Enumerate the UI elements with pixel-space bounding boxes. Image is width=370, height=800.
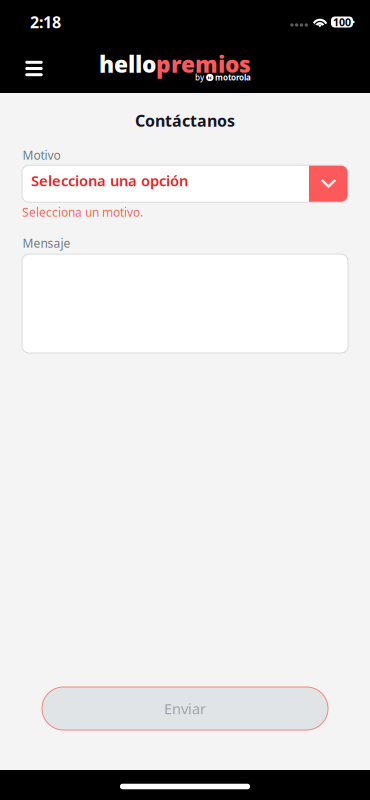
staticText: 2:18 [30,11,61,33]
staticText: 100 [333,15,351,29]
staticText: Enviar [164,699,206,718]
button[interactable]: Mensaje [22,254,348,353]
staticText: motorola [215,72,251,83]
staticText: Mensaje [22,235,70,251]
staticText: by [195,72,204,83]
button[interactable]: Enviar [42,687,328,730]
button[interactable]: Menu [12,46,56,90]
staticText: Contáctanos [135,110,235,131]
staticText: Selecciona un motivo. [22,204,143,220]
staticText: Motivo [22,147,60,163]
staticText: premios [156,49,251,79]
staticText: hello [99,49,156,79]
button[interactable]: Selecciona una opción [22,165,348,202]
staticText: Selecciona una opción [31,171,188,190]
